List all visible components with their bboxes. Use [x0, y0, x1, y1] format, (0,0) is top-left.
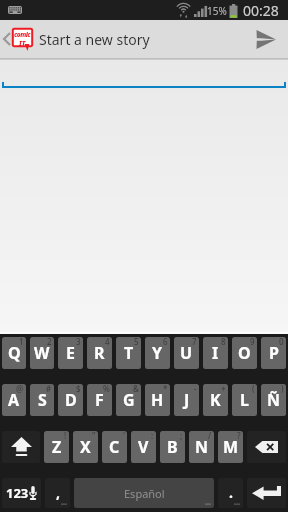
staticText: 9 — [250, 337, 255, 347]
staticText: G — [123, 389, 135, 411]
button[interactable]: Enter — [247, 478, 286, 508]
button[interactable]: Q — [2, 337, 26, 369]
button[interactable]: U — [174, 337, 199, 369]
staticText: Start a new story — [39, 30, 150, 49]
staticText: 5 — [134, 337, 139, 347]
staticText: @ — [16, 384, 24, 394]
staticText: - — [194, 384, 197, 394]
button[interactable]: . — [218, 478, 243, 508]
button[interactable]: Y — [145, 337, 170, 369]
button[interactable]: C — [102, 431, 127, 463]
staticText: B — [167, 436, 178, 458]
staticText: / — [208, 431, 212, 441]
staticText: S — [38, 389, 47, 411]
staticText: ( — [252, 384, 255, 394]
button[interactable]: K — [203, 384, 228, 416]
staticText: P — [269, 342, 279, 364]
button[interactable]: H — [145, 384, 170, 416]
staticText: V — [138, 436, 149, 458]
button[interactable]: Z — [44, 431, 69, 463]
staticText: C — [109, 436, 120, 458]
button[interactable]: Español — [74, 478, 214, 508]
button[interactable]: M — [218, 431, 243, 463]
staticText: F — [95, 389, 104, 411]
button[interactable]: N — [189, 431, 214, 463]
staticText: 6 — [163, 337, 168, 347]
button[interactable]: Shift — [2, 431, 40, 463]
button[interactable]: V — [131, 431, 156, 463]
button[interactable]: F — [87, 384, 112, 416]
staticText: , — [56, 483, 60, 502]
staticText: K — [210, 389, 221, 411]
staticText: 123 — [6, 484, 29, 502]
staticText: Y — [152, 342, 163, 364]
staticText: ! — [64, 431, 67, 441]
button[interactable]: W — [30, 337, 54, 369]
button[interactable]: Ñ — [261, 384, 286, 416]
button[interactable]: Symbols and voice input — [2, 478, 41, 508]
staticText: ' — [123, 431, 125, 441]
button[interactable]: D — [58, 384, 83, 416]
button[interactable]: S — [30, 384, 54, 416]
staticText: IT — [19, 39, 26, 48]
button[interactable]: P — [261, 337, 286, 369]
staticText: 2 — [47, 337, 52, 347]
button[interactable]: , — [45, 478, 70, 508]
button[interactable]: X — [73, 431, 98, 463]
staticText: U — [180, 342, 193, 364]
staticText: comic — [14, 30, 31, 39]
staticText: ; — [180, 431, 183, 441]
staticText: Ñ — [267, 389, 280, 411]
button[interactable]: G — [116, 384, 141, 416]
staticText: ? — [237, 431, 241, 441]
staticText: 4 — [105, 337, 110, 347]
staticText: 15% — [207, 4, 227, 18]
staticText: * — [163, 384, 168, 394]
staticText: % — [103, 384, 110, 394]
button[interactable]: O — [232, 337, 257, 369]
staticText: J — [184, 389, 190, 411]
staticText: 7 — [192, 337, 197, 347]
staticText: A — [8, 389, 20, 411]
staticText: 3 — [76, 337, 81, 347]
staticText: T — [124, 342, 134, 364]
staticText: D — [65, 389, 77, 411]
button[interactable]: L — [232, 384, 257, 416]
staticText: & — [133, 384, 139, 394]
staticText: Z — [52, 436, 62, 458]
button[interactable]: Backspace — [247, 431, 286, 463]
button[interactable]: R — [87, 337, 112, 369]
staticText: # — [46, 384, 52, 394]
staticText: 0 — [279, 337, 284, 347]
staticText: E — [66, 342, 75, 364]
button[interactable]: T — [116, 337, 141, 369]
button[interactable]: I — [203, 337, 228, 369]
staticText: $ — [76, 384, 81, 394]
staticText: M — [223, 436, 239, 458]
staticText: Q — [8, 342, 21, 364]
button[interactable]: E — [58, 337, 83, 369]
staticText: Español — [124, 486, 165, 501]
staticText: R — [94, 342, 105, 364]
staticText: ) — [281, 384, 284, 394]
staticText: N — [195, 436, 209, 458]
staticText: H — [151, 389, 164, 411]
staticText: : — [151, 431, 154, 441]
staticText: X — [80, 436, 91, 458]
staticText: 8 — [221, 337, 226, 347]
staticText: W — [34, 342, 50, 364]
staticText: " — [92, 431, 96, 441]
staticText: I — [212, 342, 219, 364]
staticText: L — [240, 389, 249, 411]
staticText: 00:28 — [243, 1, 279, 20]
button[interactable]: A — [2, 384, 26, 416]
button[interactable]: B — [160, 431, 185, 463]
button[interactable]: Up — [0, 20, 33, 58]
staticText: 1 — [19, 337, 24, 347]
staticText: . — [229, 483, 233, 502]
staticText: + — [221, 384, 226, 394]
button[interactable]: J — [174, 384, 199, 416]
staticText: O — [238, 342, 251, 364]
button[interactable]: Send — [244, 20, 288, 58]
